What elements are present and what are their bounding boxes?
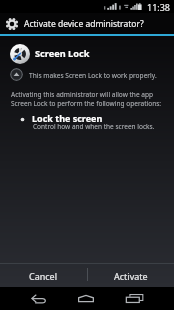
button[interactable]: Cancel [0, 264, 87, 288]
staticText: This makes Screen Lock to work properly. [29, 71, 157, 80]
button[interactable]: Recent apps [117, 287, 151, 310]
button[interactable]: Activate [87, 264, 174, 288]
staticText: 11:38 [147, 1, 171, 13]
button[interactable]: Home [69, 287, 103, 310]
staticText: Screen Lock [35, 47, 90, 60]
staticText: Lock the screen [32, 112, 103, 124]
button[interactable]: Collapse details [10, 68, 23, 81]
button[interactable]: Back [21, 287, 55, 310]
staticText: Activating this administrator will allow… [11, 90, 162, 108]
staticText: Activate device administrator? [24, 18, 144, 30]
staticText: Activate [114, 270, 148, 282]
staticText: Control how and when the screen locks. [33, 122, 155, 131]
staticText: Cancel [29, 270, 58, 282]
